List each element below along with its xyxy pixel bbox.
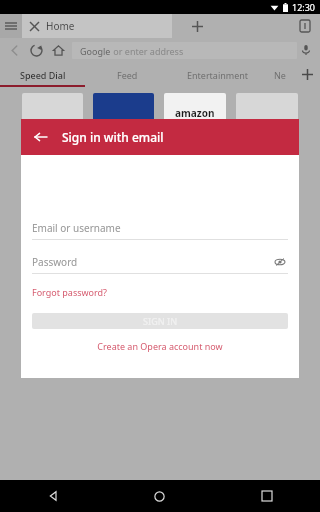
staticText: amazon (175, 106, 215, 120)
button[interactable]: Home (22, 14, 172, 38)
button[interactable]: Recent apps (213, 480, 320, 512)
button[interactable]: Show password (272, 254, 288, 270)
staticText: Create an Opera account now (97, 340, 223, 352)
staticText: Entertainment (187, 69, 249, 81)
button[interactable]: Forgot password? (32, 286, 108, 298)
button[interactable] (236, 93, 298, 133)
button[interactable]: Menu (0, 14, 22, 38)
button[interactable]: amazon (164, 93, 226, 133)
button[interactable]: Feed (85, 62, 170, 87)
button[interactable]: Reload (27, 41, 45, 59)
button[interactable]: Voice search (297, 41, 315, 59)
button[interactable]: Back (0, 480, 106, 512)
button[interactable]: Ne (265, 62, 295, 87)
button[interactable] (22, 93, 83, 133)
button[interactable]: Add page (295, 62, 320, 87)
button[interactable]: Create an Opera account now (97, 340, 223, 352)
button[interactable] (93, 93, 154, 133)
button[interactable]: Back (31, 127, 51, 147)
staticText: SIGN IN (143, 315, 178, 327)
button[interactable]: Email or username (32, 217, 288, 239)
staticText: Speed Dial (20, 69, 66, 81)
staticText: Feed (117, 69, 138, 81)
button[interactable]: Home (49, 41, 67, 59)
staticText: Google (80, 45, 111, 57)
button[interactable]: Back (5, 41, 23, 59)
button[interactable]: Home (106, 480, 213, 512)
button[interactable]: Entertainment (170, 62, 265, 87)
staticText: Forgot password? (32, 286, 108, 298)
staticText: Password (32, 255, 78, 269)
staticText: Email or username (32, 221, 121, 235)
staticText: 12:30 (292, 1, 316, 13)
staticText: or enter address (111, 45, 184, 57)
staticText: Sign in with email (62, 129, 164, 145)
staticText: Ne (274, 69, 286, 81)
staticText: Home (46, 19, 75, 33)
button[interactable]: Speed Dial (0, 62, 85, 87)
button[interactable]: Tabs (290, 14, 320, 38)
button[interactable]: Password (32, 251, 288, 273)
button[interactable]: Google (72, 42, 297, 59)
button[interactable]: New tab (172, 14, 222, 38)
